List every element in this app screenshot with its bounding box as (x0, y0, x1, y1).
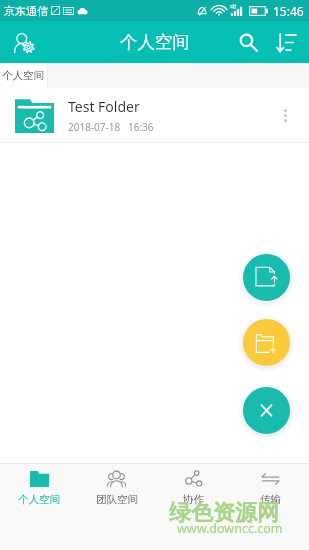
button[interactable]: 传输 (232, 464, 309, 506)
staticText: www.downcc.com (177, 520, 283, 537)
staticText: 个人空间 (18, 493, 60, 506)
staticText: 个人空间 (120, 31, 190, 53)
staticText: Test Folder (68, 97, 140, 116)
staticText: 京东通信 (4, 4, 48, 18)
button[interactable]: Close (243, 387, 290, 434)
staticText: 绿色资源网 (169, 499, 279, 527)
staticText: 个人空间 (2, 69, 44, 82)
button[interactable]: 个人空间 (0, 63, 47, 88)
staticText: 15:46 (273, 3, 304, 19)
button[interactable]: Search (229, 23, 267, 61)
button[interactable]: Upload file (243, 254, 290, 301)
button[interactable]: New folder (243, 319, 290, 366)
staticText: 协作 (183, 493, 204, 506)
button[interactable]: 协作 (155, 464, 232, 506)
staticText: 团队空间 (96, 493, 138, 506)
button[interactable]: More options (269, 99, 301, 131)
staticText: 传输 (260, 493, 281, 506)
button[interactable]: 个人空间 (0, 464, 78, 506)
staticText: 2018-07-18 16:36 (68, 120, 154, 134)
button[interactable]: 团队空间 (78, 464, 155, 506)
button[interactable]: Sort (267, 23, 305, 61)
button[interactable]: Test Folder (0, 88, 309, 143)
button[interactable]: Account settings (6, 24, 43, 61)
